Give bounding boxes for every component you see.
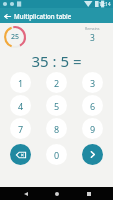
button[interactable]: 0 bbox=[46, 144, 67, 165]
staticText: 35 : 5 = bbox=[31, 51, 82, 71]
staticText: 4 bbox=[18, 100, 24, 112]
button[interactable]: 5 bbox=[46, 95, 67, 116]
button[interactable]: Check answer bbox=[82, 144, 103, 165]
staticText: 6 bbox=[90, 100, 96, 112]
button[interactable]: 1 bbox=[10, 72, 31, 93]
staticText: 3 bbox=[90, 77, 96, 89]
button[interactable]: 3 bbox=[82, 72, 103, 93]
button[interactable]: 8 bbox=[46, 118, 67, 139]
button[interactable]: Back bbox=[19, 187, 32, 200]
staticText: 7 bbox=[18, 123, 24, 135]
button[interactable]: 6 bbox=[82, 95, 103, 116]
staticText: Multiplication table bbox=[14, 12, 72, 20]
button[interactable]: Home bbox=[50, 187, 63, 200]
staticText: 0 bbox=[54, 149, 60, 161]
staticText: 25 bbox=[11, 32, 20, 42]
staticText: 12:14 bbox=[99, 1, 111, 7]
button[interactable]: Navigate up bbox=[0, 9, 14, 23]
staticText: 1 bbox=[18, 77, 24, 89]
button[interactable]: 2 bbox=[46, 72, 67, 93]
staticText: Remains bbox=[85, 26, 100, 31]
staticText: 2 bbox=[54, 77, 60, 89]
button[interactable]: Backspace bbox=[10, 144, 31, 165]
staticText: 3 bbox=[90, 32, 95, 44]
button[interactable]: 9 bbox=[82, 118, 103, 139]
staticText: 5 bbox=[54, 100, 60, 112]
staticText: 8 bbox=[54, 123, 60, 135]
button[interactable]: 4 bbox=[10, 95, 31, 116]
button[interactable]: Recent apps bbox=[82, 187, 95, 200]
button[interactable]: 7 bbox=[10, 118, 31, 139]
staticText: 9 bbox=[90, 123, 96, 135]
